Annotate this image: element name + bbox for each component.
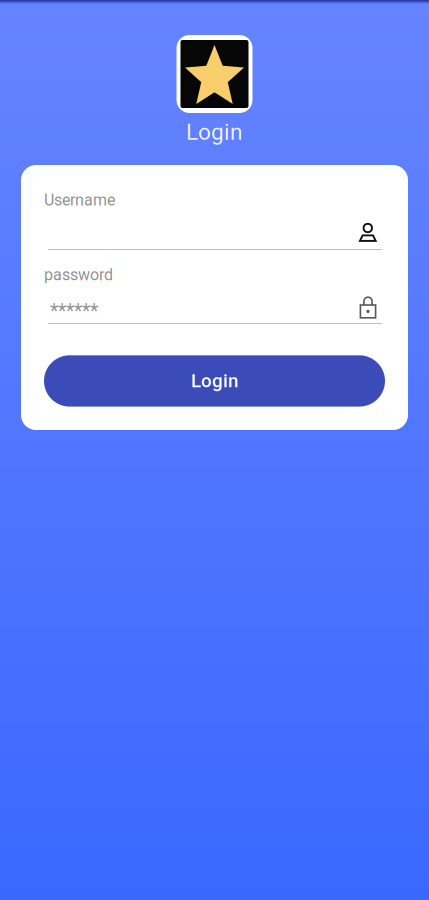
staticText: Login [186, 119, 243, 145]
staticText: password [44, 265, 113, 284]
button[interactable]: Login [44, 355, 385, 407]
staticText: Login [191, 370, 238, 392]
staticText: Username [44, 191, 115, 209]
staticText: ****** [50, 300, 98, 323]
